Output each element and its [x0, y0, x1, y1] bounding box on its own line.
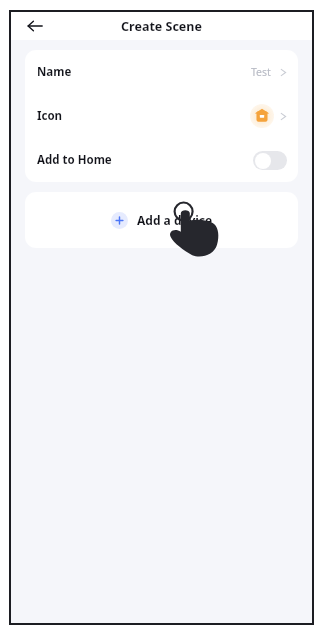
button[interactable]: Add to Home toggle: [253, 151, 287, 170]
staticText: Add to Home: [37, 152, 112, 168]
staticText: Name: [37, 64, 72, 80]
button[interactable]: Add to Home: [25, 138, 298, 182]
staticText: Create Scene: [121, 18, 202, 35]
button[interactable]: Add a device: [25, 192, 298, 248]
button[interactable]: Name: [25, 50, 298, 94]
staticText: Add a device: [137, 212, 213, 228]
staticText: Test: [251, 65, 271, 79]
staticText: Icon: [37, 108, 63, 124]
button[interactable]: Icon: [25, 94, 298, 138]
button[interactable]: Back: [21, 12, 49, 40]
